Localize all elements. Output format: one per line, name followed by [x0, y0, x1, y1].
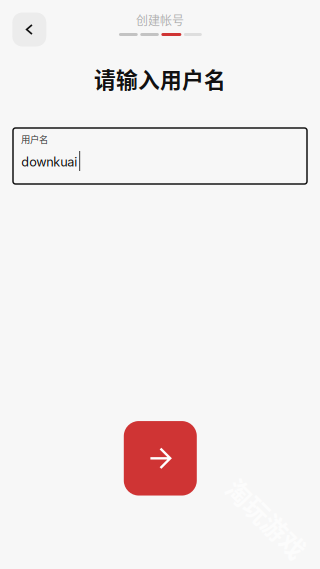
staticText: 创建帐号	[136, 11, 184, 29]
staticText: downkuai	[21, 154, 77, 169]
staticText: 用户名	[21, 132, 48, 146]
staticText: 请输入用户名	[94, 63, 226, 94]
button[interactable]: Continue	[124, 421, 197, 496]
button[interactable]: Back	[12, 12, 46, 46]
button[interactable]: 用户名	[13, 128, 307, 184]
